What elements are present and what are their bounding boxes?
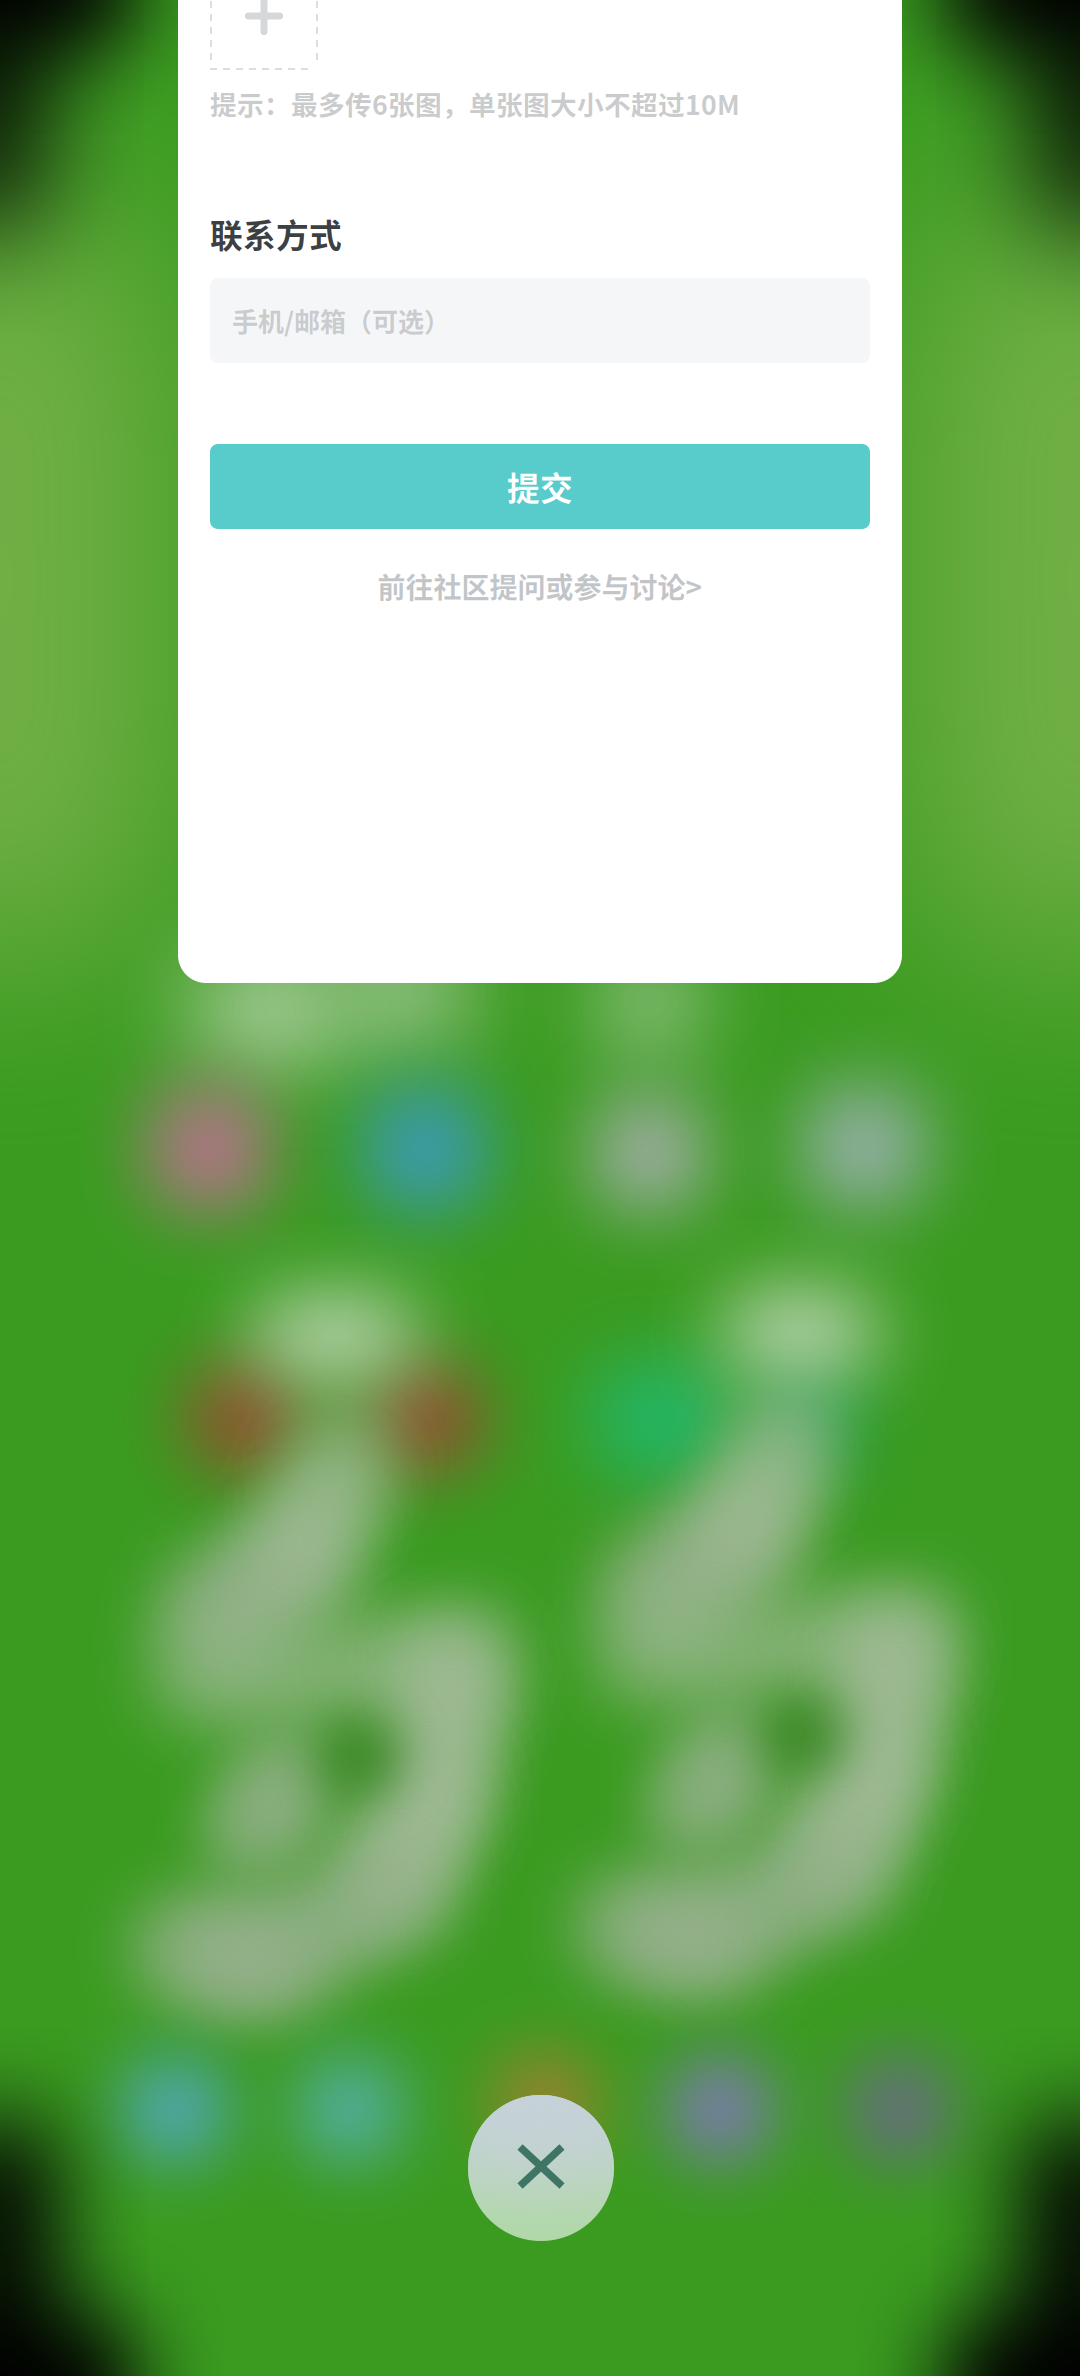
button[interactable]: Close xyxy=(468,2095,614,2241)
button[interactable]: 提交 xyxy=(210,444,870,529)
staticText: 提示：最多传6张图，单张图大小不超过10M xyxy=(210,84,740,123)
staticText: 手机/邮箱（可选） xyxy=(232,302,450,339)
button[interactable]: 前往社区提问或参与讨论> xyxy=(210,566,870,606)
staticText: 前往社区提问或参与讨论> xyxy=(377,566,702,606)
staticText: 联系方式 xyxy=(210,210,342,257)
staticText: 提交 xyxy=(507,463,573,510)
button[interactable]: Add photo xyxy=(210,0,318,70)
